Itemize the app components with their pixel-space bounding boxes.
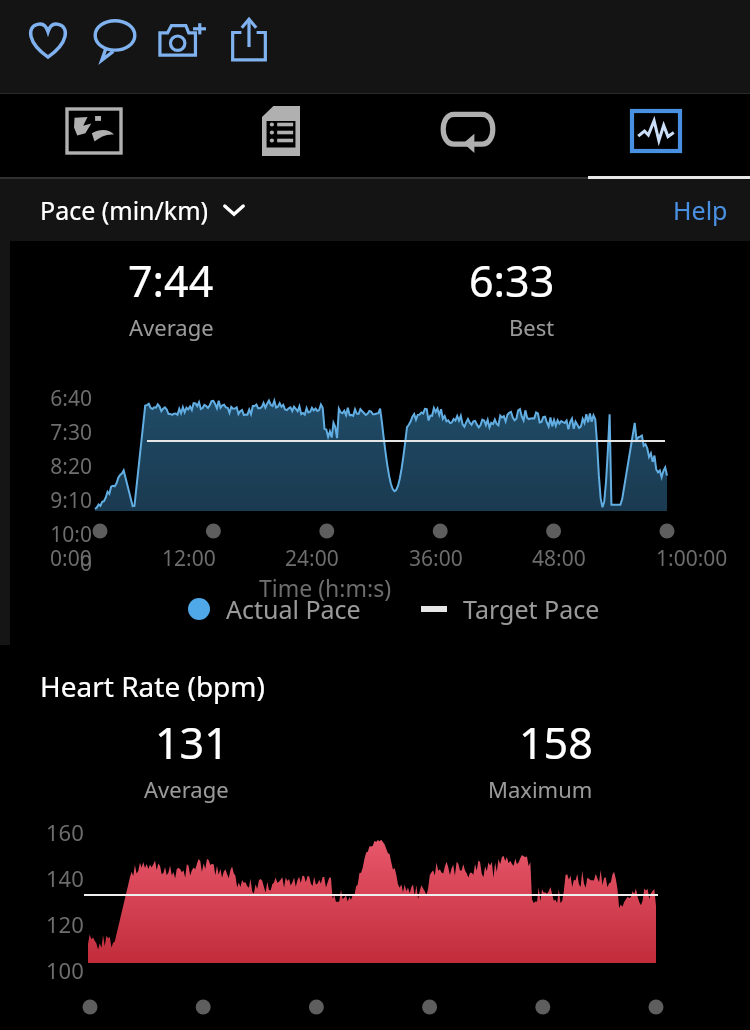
staticText: 12:00 — [162, 544, 216, 573]
staticText: Actual Pace — [226, 592, 361, 626]
staticText: Maximum — [488, 774, 593, 804]
staticText: 1:00:00 — [656, 544, 728, 573]
staticText: 7:30 — [50, 418, 92, 447]
staticText: 9:10 — [50, 486, 92, 515]
staticText: Average — [144, 774, 229, 804]
staticText: 100 — [46, 955, 84, 985]
button[interactable]: Add photo — [148, 0, 215, 80]
staticText: 120 — [46, 909, 84, 939]
staticText: 8:20 — [50, 452, 92, 481]
staticText: Time (h:m:s) — [259, 572, 392, 603]
button[interactable]: Pace (min/km) — [40, 193, 245, 227]
button[interactable]: Like — [14, 0, 81, 80]
staticText: Help — [673, 193, 728, 227]
staticText: 24:00 — [285, 544, 339, 573]
staticText: 7:44 — [128, 251, 214, 310]
button[interactable]: Map — [0, 94, 187, 179]
button[interactable]: Help — [673, 193, 728, 227]
staticText: Best — [509, 312, 555, 342]
staticText: Average — [129, 312, 214, 342]
staticText: 140 — [46, 863, 84, 893]
staticText: 6:33 — [469, 251, 555, 310]
button[interactable]: Share — [215, 0, 282, 80]
button[interactable]: Details — [187, 94, 374, 179]
staticText: 160 — [46, 817, 84, 847]
staticText: 6:40 — [50, 384, 92, 413]
button[interactable]: Comment — [81, 0, 148, 80]
staticText: 48:00 — [532, 544, 586, 573]
staticText: 0:00 — [50, 544, 92, 573]
staticText: Pace (min/km) — [40, 193, 209, 227]
staticText: 131 — [155, 713, 229, 772]
staticText: 10:00 — [40, 520, 92, 578]
staticText: 36:00 — [409, 544, 463, 573]
button[interactable]: Charts — [562, 94, 750, 179]
staticText: Heart Rate (bpm) — [40, 667, 265, 705]
staticText: Target Pace — [463, 592, 600, 626]
button[interactable]: Laps — [374, 94, 562, 179]
staticText: 158 — [519, 713, 593, 772]
